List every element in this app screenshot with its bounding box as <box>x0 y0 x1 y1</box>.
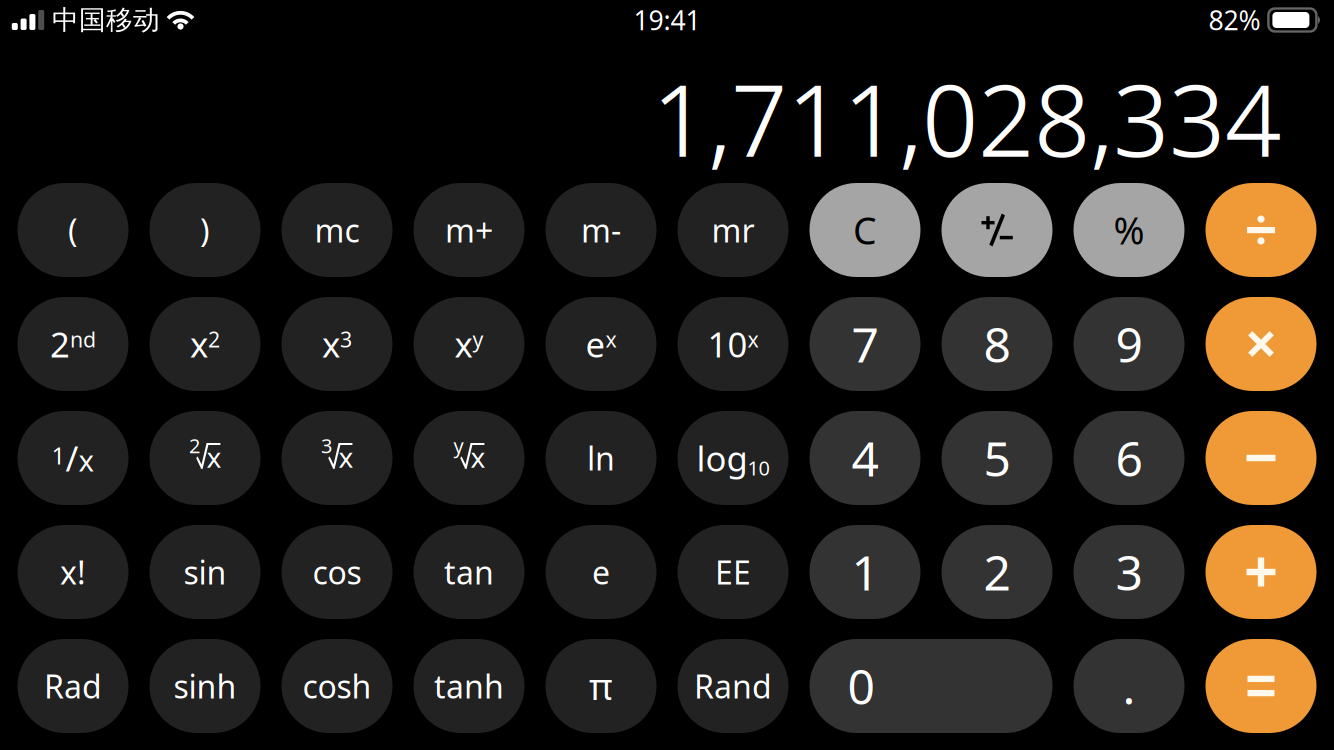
staticText: sinh <box>173 665 236 707</box>
staticText: 6 <box>1115 426 1142 490</box>
button[interactable]: 5 <box>941 411 1052 505</box>
staticText: 4 <box>851 426 878 490</box>
button[interactable]: xy <box>413 297 524 391</box>
staticText: x <box>338 438 353 476</box>
button[interactable]: 8 <box>941 297 1052 391</box>
staticText: ex <box>585 321 616 367</box>
staticText: 7 <box>851 312 878 376</box>
staticText: Rad <box>44 665 102 707</box>
staticText: 5 <box>983 426 1010 490</box>
button[interactable]: C <box>809 183 920 277</box>
staticText: 中国移动 <box>52 4 160 36</box>
staticText: sin <box>183 551 226 593</box>
staticText: ) <box>200 209 210 251</box>
staticText: 1,711,028,334 <box>652 51 1281 186</box>
staticText: m- <box>581 209 621 251</box>
staticText: 1 <box>851 540 878 604</box>
button[interactable]: Rand <box>677 639 788 733</box>
staticText: 9 <box>1115 312 1142 376</box>
staticText: . <box>1122 654 1135 718</box>
staticText: x3 <box>322 321 352 367</box>
button[interactable]: cos <box>281 525 392 619</box>
staticText: 8 <box>983 312 1010 376</box>
button[interactable]: 2nd <box>17 297 128 391</box>
button[interactable]: mc <box>281 183 392 277</box>
button[interactable]: log base 10 <box>677 411 788 505</box>
button[interactable]: tanh <box>413 639 524 733</box>
button[interactable]: x2 <box>149 297 260 391</box>
button[interactable]: plus <box>1205 525 1316 619</box>
button[interactable]: root 3 of x <box>281 411 392 505</box>
staticText: x <box>470 438 485 476</box>
staticText: 2 <box>983 540 1010 604</box>
button[interactable]: sinh <box>149 639 260 733</box>
staticText: x2 <box>190 321 220 367</box>
button[interactable]: e <box>545 525 656 619</box>
button[interactable]: ln <box>545 411 656 505</box>
button[interactable]: 3 <box>1073 525 1184 619</box>
staticText: log10 <box>696 435 769 481</box>
button[interactable]: root 2 of x <box>149 411 260 505</box>
button[interactable]: x3 <box>281 297 392 391</box>
button[interactable]: ex <box>545 297 656 391</box>
button[interactable]: m- <box>545 183 656 277</box>
button[interactable]: one over x <box>17 411 128 505</box>
staticText: ( <box>68 209 78 251</box>
button[interactable]: m+ <box>413 183 524 277</box>
staticText: tan <box>444 551 494 593</box>
button[interactable]: tan <box>413 525 524 619</box>
staticText: Rand <box>694 665 772 707</box>
button[interactable]: multiply <box>1205 297 1316 391</box>
staticText: mc <box>314 209 359 251</box>
button[interactable]: . <box>1073 639 1184 733</box>
staticText: 10x <box>707 321 758 367</box>
staticText: π <box>589 662 613 710</box>
staticText: 2 <box>189 432 200 459</box>
button[interactable]: x! <box>17 525 128 619</box>
staticText: % <box>1113 205 1144 255</box>
button[interactable]: mr <box>677 183 788 277</box>
button[interactable]: EE <box>677 525 788 619</box>
staticText: EE <box>715 551 751 593</box>
staticText: x! <box>60 551 86 593</box>
staticText: 3 <box>1115 540 1142 604</box>
staticText: tanh <box>434 665 504 707</box>
button[interactable]: equals <box>1205 639 1316 733</box>
button[interactable]: cosh <box>281 639 392 733</box>
staticText: 2nd <box>50 321 96 367</box>
staticText: e <box>592 551 610 593</box>
staticText: y <box>453 432 463 459</box>
button[interactable]: 7 <box>809 297 920 391</box>
button[interactable]: divide <box>1205 183 1316 277</box>
staticText: ln <box>587 437 615 479</box>
staticText: C <box>853 205 877 255</box>
button[interactable]: π <box>545 639 656 733</box>
button[interactable]: 1 <box>809 525 920 619</box>
button[interactable]: plus minus <box>941 183 1052 277</box>
staticText: cosh <box>302 665 371 707</box>
staticText: 19:41 <box>633 2 700 38</box>
button[interactable]: ( <box>17 183 128 277</box>
staticText: mr <box>711 209 754 251</box>
staticText: x <box>206 438 221 476</box>
button[interactable]: ) <box>149 183 260 277</box>
staticText: cos <box>312 551 361 593</box>
staticText: 82% <box>1208 2 1260 38</box>
staticText: xy <box>454 321 483 367</box>
staticText: 3 <box>321 432 332 459</box>
button[interactable]: Rad <box>17 639 128 733</box>
button[interactable]: root y of x <box>413 411 524 505</box>
staticText: 0 <box>847 654 874 718</box>
button[interactable]: 0 <box>809 639 1052 733</box>
button[interactable]: minus <box>1205 411 1316 505</box>
button[interactable]: % <box>1073 183 1184 277</box>
staticText: 1/x <box>51 435 94 481</box>
staticText: m+ <box>445 209 493 251</box>
button[interactable]: 10x <box>677 297 788 391</box>
button[interactable]: 4 <box>809 411 920 505</box>
button[interactable]: sin <box>149 525 260 619</box>
button[interactable]: 6 <box>1073 411 1184 505</box>
button[interactable]: 2 <box>941 525 1052 619</box>
button[interactable]: 9 <box>1073 297 1184 391</box>
